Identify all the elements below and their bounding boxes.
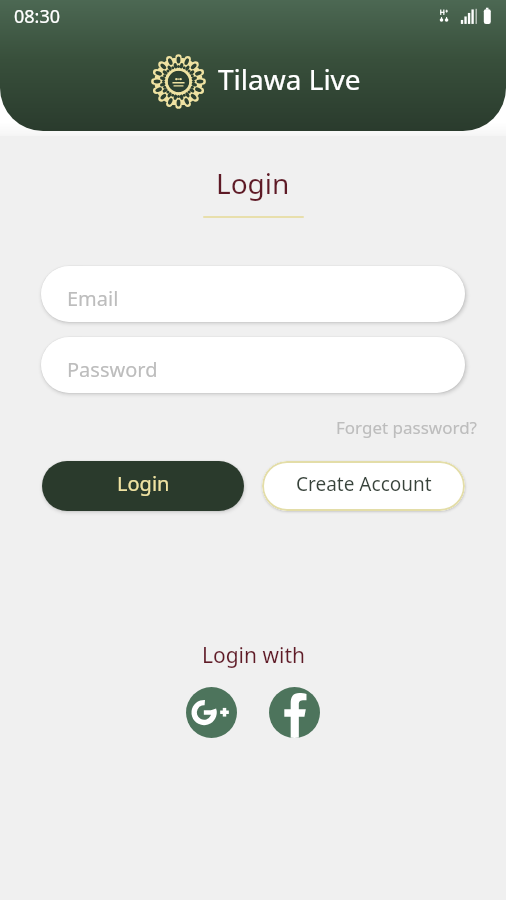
button[interactable]: Create Account xyxy=(262,461,465,511)
button[interactable]: Login with Google xyxy=(186,687,237,738)
staticText: Forget password? xyxy=(336,416,477,439)
staticText: Email xyxy=(67,285,119,312)
button[interactable]: Email xyxy=(41,266,465,322)
button[interactable]: Login with Facebook xyxy=(269,687,320,738)
staticText: 08:30 xyxy=(14,4,61,29)
staticText: Login xyxy=(216,164,290,202)
button[interactable]: Forget password? xyxy=(336,416,477,439)
button[interactable]: Login xyxy=(42,461,244,511)
staticText: Tilawa Live xyxy=(218,60,361,98)
staticText: Password xyxy=(67,356,158,383)
staticText: Login with xyxy=(202,641,305,670)
staticText: Create Account xyxy=(296,471,432,497)
button[interactable]: Password xyxy=(41,337,465,393)
staticText: Login xyxy=(117,470,170,497)
